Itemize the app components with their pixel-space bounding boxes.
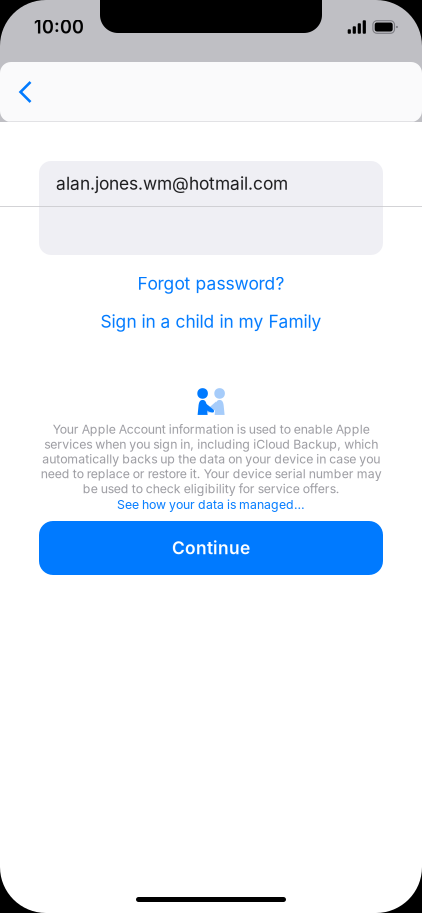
staticText: Forgot password? bbox=[137, 273, 284, 294]
staticText: alan.jones.wm@hotmail.com bbox=[56, 173, 288, 194]
button[interactable]: Continue bbox=[0, 521, 422, 575]
button[interactable]: See how your data is managed… bbox=[117, 496, 305, 513]
staticText: Continue bbox=[172, 537, 250, 558]
staticText: 10:00 bbox=[34, 16, 84, 38]
button[interactable]: Sign in a child in my Family bbox=[90, 307, 331, 336]
staticText: Sign in a child in my Family bbox=[100, 311, 321, 332]
staticText: Your Apple Account information is used t… bbox=[40, 422, 381, 496]
button[interactable]: Back bbox=[0, 62, 46, 121]
button[interactable]: Forgot password? bbox=[127, 269, 294, 298]
staticText: See how your data is managed… bbox=[117, 497, 305, 512]
